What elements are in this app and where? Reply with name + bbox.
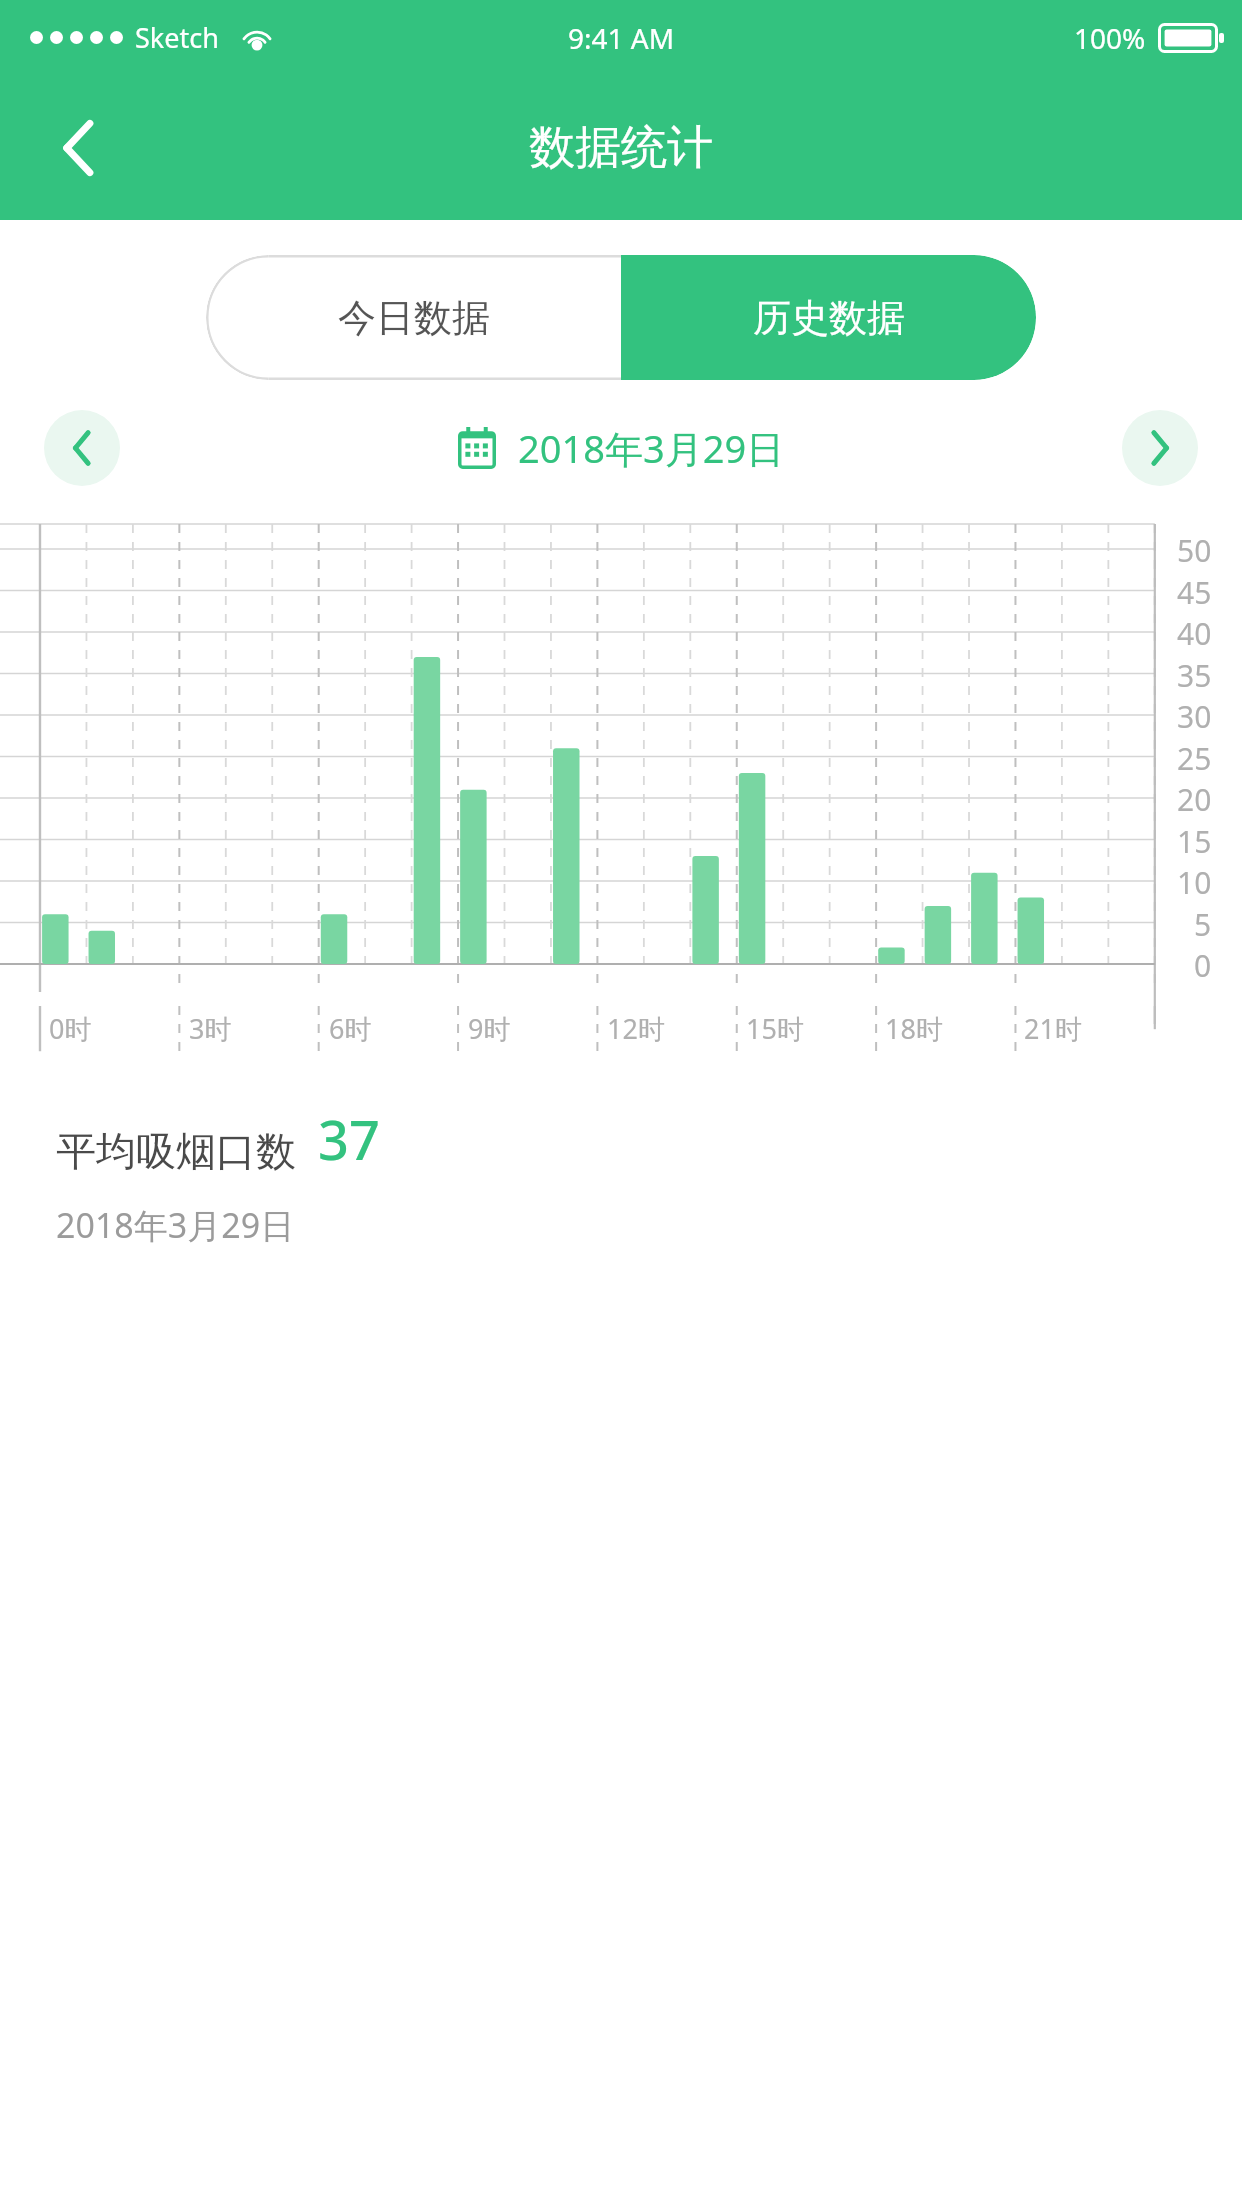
staticText: 今日数据 [338, 294, 490, 342]
staticText: 100% [1074, 19, 1146, 57]
staticText: 21时 [1024, 1010, 1082, 1047]
staticText: 2018年3月29日 [56, 1202, 295, 1248]
staticText: 数据统计 [529, 119, 713, 177]
staticText: 9:41 AM [568, 19, 675, 57]
staticText: 10 [1177, 862, 1212, 903]
staticText: 历史数据 [753, 294, 905, 342]
staticText: 15时 [746, 1010, 804, 1047]
staticText: 3时 [189, 1010, 232, 1047]
staticText: 0时 [49, 1010, 92, 1047]
staticText: 6时 [329, 1010, 372, 1047]
staticText: 12时 [607, 1010, 665, 1047]
button[interactable]: Back [40, 109, 118, 187]
staticText: 9时 [468, 1010, 511, 1047]
staticText: 平均吸烟口数 [56, 1126, 296, 1176]
button[interactable]: Previous day [44, 410, 120, 486]
staticText: 0 [1194, 945, 1212, 986]
staticText: 45 [1177, 572, 1212, 613]
staticText: 20 [1177, 779, 1212, 820]
button[interactable]: 历史数据 [621, 255, 1036, 380]
staticText: 30 [1177, 696, 1212, 737]
staticText: 5 [1194, 904, 1212, 945]
staticText: 25 [1177, 738, 1212, 779]
staticText: 50 [1177, 530, 1212, 571]
button[interactable]: 今日数据 [206, 255, 621, 380]
staticText: Sketch [135, 19, 219, 56]
staticText: 35 [1177, 655, 1212, 696]
staticText: 15 [1177, 821, 1212, 862]
staticText: 37 [318, 1102, 380, 1176]
button[interactable]: 2018年3月29日 [518, 422, 785, 474]
staticText: 18时 [885, 1010, 943, 1047]
staticText: 40 [1177, 613, 1212, 654]
button[interactable]: Next day [1122, 410, 1198, 486]
